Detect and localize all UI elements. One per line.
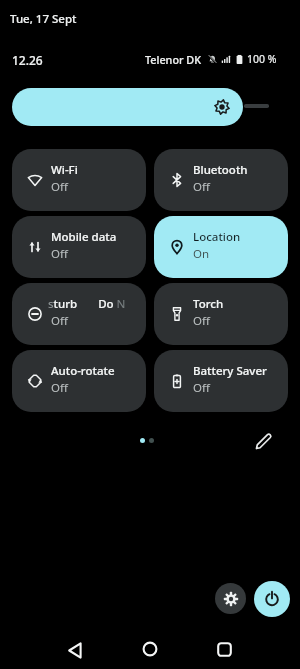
button[interactable]: Auto-rotate: [12, 350, 146, 412]
button[interactable]: [135, 634, 165, 664]
staticText: Off: [193, 313, 210, 329]
staticText: On: [193, 246, 210, 262]
button[interactable]: Location: [154, 216, 288, 278]
button[interactable]: Battery Saver: [154, 350, 288, 412]
staticText: 12.26: [12, 52, 43, 68]
staticText: sturb Do N: [48, 296, 126, 312]
button[interactable]: [254, 581, 290, 617]
staticText: Off: [51, 313, 68, 329]
staticText: Location: [193, 229, 241, 245]
button[interactable]: Mobile data: [12, 216, 146, 278]
staticText: Off: [51, 380, 68, 396]
button[interactable]: [12, 88, 243, 126]
staticText: Auto-rotate: [51, 363, 115, 379]
staticText: Off: [51, 246, 68, 262]
staticText: Telenor DK: [145, 52, 202, 67]
button[interactable]: Bluetooth: [154, 149, 288, 211]
button[interactable]: [209, 634, 239, 664]
staticText: 100 %: [247, 52, 277, 66]
staticText: Off: [193, 179, 210, 195]
staticText: Bluetooth: [193, 162, 248, 178]
staticText: Mobile data: [51, 229, 117, 245]
staticText: Battery Saver: [193, 363, 267, 379]
staticText: Wi-Fi: [51, 162, 78, 178]
staticText: Off: [51, 179, 68, 195]
button[interactable]: Torch: [154, 283, 288, 345]
button[interactable]: sturb Do N: [12, 283, 146, 345]
staticText: Tue, 17 Sept: [10, 11, 77, 27]
staticText: Torch: [193, 296, 224, 312]
button[interactable]: [60, 635, 90, 665]
button[interactable]: [249, 426, 277, 454]
button[interactable]: [215, 583, 246, 614]
staticText: Off: [193, 380, 210, 396]
button[interactable]: Wi-Fi: [12, 149, 146, 211]
